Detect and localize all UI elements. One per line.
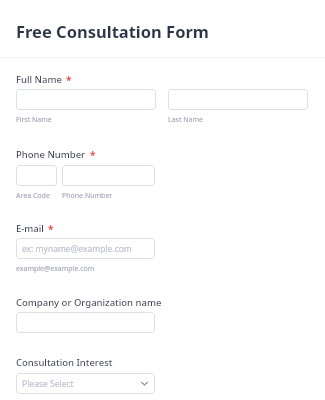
button[interactable]: [168, 89, 308, 110]
staticText: First Name: [16, 115, 52, 125]
staticText: Please Select: [22, 378, 74, 390]
staticText: *: [48, 222, 54, 236]
staticText: Phone Number: [62, 191, 113, 201]
staticText: ex: myname@example.com: [22, 243, 132, 255]
button[interactable]: [16, 89, 156, 110]
staticText: Free Consultation Form: [16, 20, 209, 42]
button[interactable]: [62, 165, 155, 186]
staticText: Last Name: [168, 115, 204, 125]
staticText: *: [90, 148, 96, 162]
staticText: Full Name: [16, 73, 62, 86]
staticText: *: [66, 73, 72, 87]
button[interactable]: Consultation Interest dropdown: [16, 373, 155, 394]
button[interactable]: [16, 312, 155, 333]
staticText: Company or Organization name: [16, 296, 162, 309]
staticText: example@example.com: [16, 264, 95, 274]
button[interactable]: ex: myname@example.com: [16, 238, 155, 259]
staticText: Phone Number: [16, 148, 86, 161]
button[interactable]: [16, 165, 57, 186]
staticText: Area Code: [16, 191, 50, 201]
staticText: Consultation Interest: [16, 356, 113, 369]
staticText: E-mail: [16, 222, 44, 235]
